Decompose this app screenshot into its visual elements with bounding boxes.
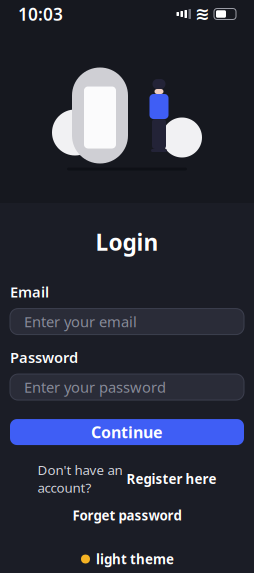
staticText: Email	[10, 282, 49, 302]
button[interactable]: Continue	[10, 419, 244, 445]
staticText: 10:03	[18, 2, 63, 25]
staticText: Enter your email	[24, 312, 137, 331]
staticText: Enter your password	[24, 377, 166, 397]
button[interactable]: Don't have an account?	[10, 457, 244, 500]
staticText: Login	[95, 227, 158, 257]
staticText: Password	[10, 348, 78, 367]
button[interactable]: Enter your password	[10, 374, 244, 400]
staticText: ≋	[195, 4, 210, 24]
staticText: Don't have an account?	[37, 461, 122, 496]
button[interactable]: Enter your email	[10, 309, 244, 335]
staticText: Continue	[91, 421, 163, 443]
staticText: Forget password	[72, 506, 181, 524]
button[interactable]: Forget password	[10, 502, 244, 528]
staticText: Register here	[126, 470, 216, 488]
button[interactable]: light theme	[10, 546, 244, 572]
staticText: light theme	[96, 550, 174, 568]
